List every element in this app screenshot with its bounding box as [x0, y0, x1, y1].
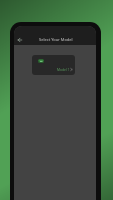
staticText: Select Your Model	[39, 37, 73, 42]
button[interactable]: Model 1	[32, 55, 75, 75]
button[interactable]: Back	[14, 34, 25, 45]
staticText: Model 1	[57, 67, 70, 71]
